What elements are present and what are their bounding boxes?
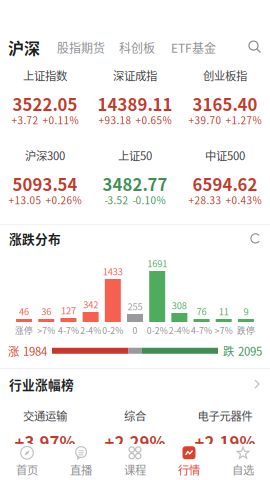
staticText: +2.29% (104, 430, 165, 454)
staticText: >7% (215, 324, 233, 336)
staticText: 2095 (238, 343, 262, 359)
staticText: 创业板指 (203, 67, 247, 84)
staticText: ETF基金 (171, 39, 216, 56)
button[interactable]: 搜索 (241, 36, 270, 59)
staticText: 电子元器件 (197, 407, 252, 424)
button[interactable]: 行情 (162, 440, 216, 480)
staticText: 交通运输 (23, 407, 67, 424)
staticText: 255 (127, 299, 142, 313)
staticText: 跌停 (237, 324, 255, 336)
staticText: 上证50 (118, 147, 152, 164)
staticText: 3522.05 (12, 92, 77, 116)
staticText: 涨 (8, 343, 19, 359)
staticText: 11 (219, 304, 229, 318)
staticText: 综合 (124, 407, 146, 424)
staticText: +39.70 +1.27% (188, 113, 261, 127)
staticText: 自选 (232, 461, 254, 478)
staticText: 首页 (16, 461, 38, 478)
staticText: -3.52 -0.10% (104, 193, 165, 207)
staticText: 1433 (103, 264, 123, 278)
staticText: 股指期货 (57, 39, 105, 56)
staticText: 2-4% (169, 324, 190, 336)
staticText: 0 (132, 324, 137, 336)
button[interactable]: 刷新 (250, 233, 261, 244)
staticText: 涨跌分布 (9, 229, 61, 247)
staticText: 沪深300 (25, 147, 65, 164)
staticText: 课程 (124, 461, 146, 478)
staticText: +93.18 +0.65% (98, 113, 171, 127)
staticText: 行业涨幅榜 (9, 375, 74, 393)
staticText: 4-7% (58, 324, 79, 336)
staticText: 科创板 (119, 39, 155, 56)
button[interactable]: 首页 (0, 440, 54, 480)
staticText: 9 (243, 304, 248, 318)
staticText: 行情 (178, 461, 200, 478)
button[interactable]: 自选 (216, 440, 270, 480)
staticText: +3.72 +0.11% (11, 113, 78, 127)
staticText: +3.97% (14, 430, 75, 454)
staticText: 0-2% (102, 324, 123, 336)
staticText: 14389.11 (97, 92, 172, 116)
staticText: 直播 (70, 461, 92, 478)
button[interactable]: ETF基金 (163, 34, 224, 61)
staticText: +28.33 +0.43% (188, 193, 261, 207)
staticText: 4-7% (191, 324, 212, 336)
button[interactable]: 课程 (108, 440, 162, 480)
staticText: 308 (172, 298, 187, 312)
staticText: 1984 (23, 343, 47, 359)
staticText: +13.05 +0.26% (8, 193, 81, 207)
button[interactable]: 股指期货 (51, 34, 111, 61)
button[interactable]: 直播 (54, 440, 108, 480)
button[interactable]: 沪深 (0, 31, 51, 64)
staticText: 76 (196, 304, 206, 318)
staticText: 沪深 (8, 36, 40, 59)
staticText: 3165.40 (192, 92, 257, 116)
staticText: 342 (83, 297, 98, 311)
staticText: 46 (19, 304, 29, 318)
staticText: >7% (37, 324, 55, 336)
staticText: 跌 (223, 343, 234, 359)
staticText: 5093.54 (12, 172, 77, 196)
button[interactable]: 科创板 (111, 34, 163, 61)
staticText: 上证指数 (23, 67, 67, 84)
staticText: +2.19% (194, 430, 255, 454)
staticText: 6594.62 (192, 172, 257, 196)
staticText: 0-2% (147, 324, 168, 336)
button[interactable]: 行业涨幅榜 (0, 369, 270, 393)
staticText: 涨停 (15, 324, 33, 336)
staticText: 1691 (147, 256, 167, 270)
staticText: 中证500 (205, 147, 245, 164)
staticText: 3482.77 (102, 172, 167, 196)
staticText: 36 (41, 304, 51, 318)
staticText: 2-4% (80, 324, 101, 336)
staticText: 127 (61, 303, 76, 317)
staticText: 深证成指 (113, 67, 157, 84)
